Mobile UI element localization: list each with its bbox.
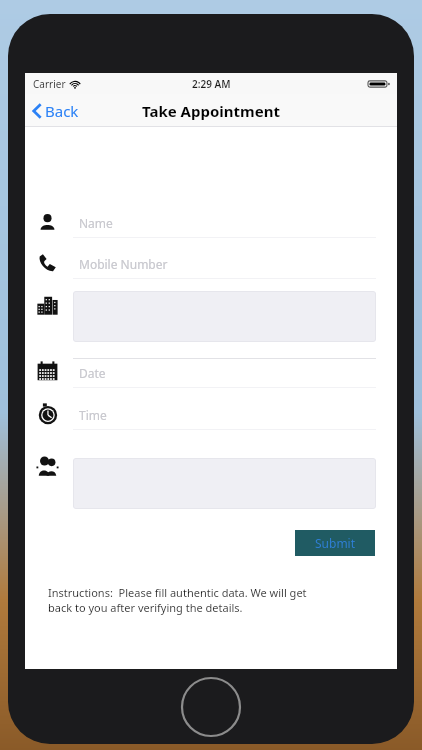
button[interactable]: Mobile Number bbox=[73, 249, 376, 279]
staticText: Submit bbox=[315, 535, 356, 551]
staticText: Time bbox=[79, 407, 107, 423]
button[interactable]: Date bbox=[73, 358, 376, 388]
staticText: Back bbox=[45, 101, 79, 121]
staticText: 2:29 AM bbox=[192, 77, 231, 91]
staticText: Instructions: Please fill authentic data… bbox=[48, 585, 378, 615]
staticText: Take Appointment bbox=[142, 101, 280, 121]
staticText: Carrier bbox=[33, 77, 66, 91]
button[interactable]: Back bbox=[25, 97, 89, 125]
staticText: Date bbox=[79, 365, 106, 381]
button[interactable]: Name bbox=[73, 208, 376, 238]
button[interactable]: Time bbox=[73, 400, 376, 430]
staticText: Name bbox=[79, 215, 113, 231]
staticText: Mobile Number bbox=[79, 256, 168, 272]
button[interactable]: Submit bbox=[295, 530, 375, 556]
